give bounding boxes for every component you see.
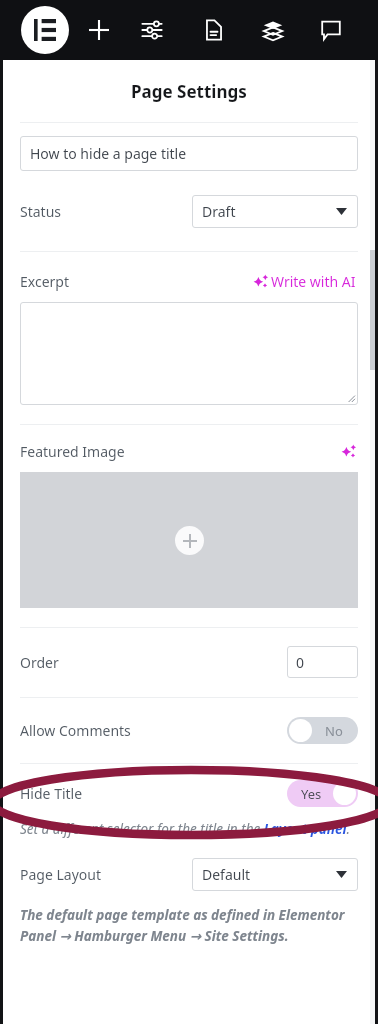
staticText: 0 xyxy=(296,653,305,672)
staticText: Hide Title xyxy=(20,784,83,803)
staticText: The default page template as defined in … xyxy=(20,906,358,945)
staticText: Status xyxy=(20,202,62,221)
button[interactable]: Toggle off, No xyxy=(287,717,358,744)
staticText: Draft xyxy=(202,202,236,221)
button[interactable]: Generate image with AI xyxy=(338,441,358,461)
staticText: Write with AI xyxy=(271,272,356,291)
button[interactable]: Add element xyxy=(82,13,116,47)
button[interactable]: How to hide a page title xyxy=(20,136,358,171)
staticText: Default xyxy=(202,865,251,884)
button[interactable]: 0 xyxy=(287,646,358,678)
button[interactable]: Default xyxy=(192,858,358,891)
button[interactable]: Page settings document xyxy=(197,13,231,47)
staticText: Yes xyxy=(301,785,322,803)
staticText: Set a different selector for the title i… xyxy=(20,820,351,838)
button[interactable]: Settings sliders xyxy=(135,13,169,47)
button[interactable]: Elementor menu xyxy=(21,6,69,54)
staticText: Order xyxy=(20,653,59,672)
staticText: How to hide a page title xyxy=(30,144,187,163)
staticText: Allow Comments xyxy=(20,721,131,740)
button[interactable] xyxy=(20,302,358,405)
button[interactable]: Toggle on, Yes xyxy=(287,780,358,807)
staticText: No xyxy=(325,722,343,740)
button[interactable]: Add featured image xyxy=(20,472,358,608)
button[interactable]: Write with AI xyxy=(251,270,358,293)
staticText: Featured Image xyxy=(20,442,125,461)
staticText: Excerpt xyxy=(20,272,69,291)
button[interactable]: Draft xyxy=(192,195,358,228)
button[interactable]: Comments xyxy=(314,13,348,47)
staticText: Page Settings xyxy=(131,80,247,103)
button[interactable]: Navigator layers xyxy=(256,13,290,47)
staticText: Page Layout xyxy=(20,865,101,884)
